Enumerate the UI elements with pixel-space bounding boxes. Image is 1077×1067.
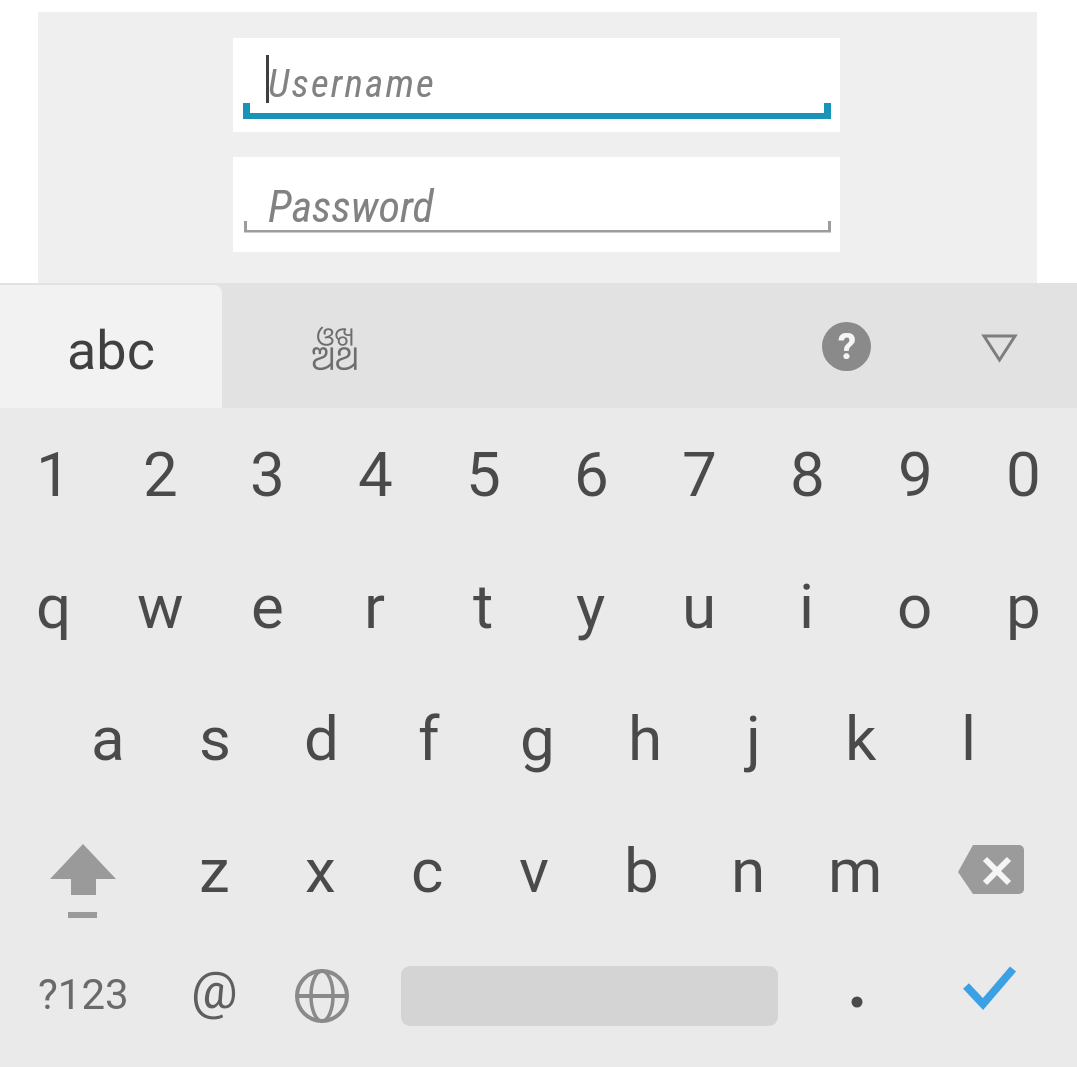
staticText: 0 bbox=[1006, 438, 1041, 511]
staticText: Username bbox=[268, 61, 437, 107]
staticText: q bbox=[36, 570, 72, 643]
staticText: 1 bbox=[36, 438, 71, 511]
staticText: i bbox=[799, 570, 815, 643]
button[interactable]: 5 bbox=[429, 408, 537, 540]
button[interactable] bbox=[375, 936, 803, 1067]
button[interactable]: w bbox=[107, 540, 214, 672]
button[interactable]: g bbox=[483, 672, 591, 804]
button[interactable]: 9 bbox=[861, 408, 969, 540]
staticText: c bbox=[411, 834, 444, 907]
staticText: n bbox=[731, 834, 766, 907]
button[interactable]: t bbox=[429, 540, 537, 672]
button[interactable]: @ bbox=[161, 936, 268, 1067]
staticText: v bbox=[519, 834, 550, 907]
staticText: abc bbox=[67, 319, 155, 382]
staticText: ଅଥ bbox=[262, 337, 408, 397]
button[interactable] bbox=[803, 936, 910, 1067]
staticText: s bbox=[199, 702, 231, 775]
staticText: 4 bbox=[358, 438, 393, 511]
staticText: 3 bbox=[250, 438, 285, 511]
staticText: @ bbox=[191, 960, 238, 1021]
button[interactable] bbox=[910, 936, 1077, 1067]
staticText: z bbox=[199, 834, 230, 907]
staticText: e bbox=[251, 570, 284, 643]
button[interactable]: ଓଖ bbox=[262, 285, 408, 408]
staticText: ଓଖ bbox=[262, 320, 408, 364]
staticText: b bbox=[624, 834, 659, 907]
staticText: 2 bbox=[143, 438, 178, 511]
button[interactable] bbox=[0, 804, 161, 936]
button[interactable]: n bbox=[695, 804, 802, 936]
staticText: a bbox=[91, 702, 125, 775]
staticText: h bbox=[628, 702, 663, 775]
staticText: u bbox=[682, 570, 717, 643]
button[interactable]: z bbox=[161, 804, 267, 936]
staticText: g bbox=[520, 702, 555, 775]
button[interactable]: v bbox=[481, 804, 588, 936]
button[interactable]: 4 bbox=[321, 408, 429, 540]
button[interactable]: 1 bbox=[0, 408, 107, 540]
button[interactable]: p bbox=[969, 540, 1077, 672]
button[interactable]: ? bbox=[822, 322, 871, 371]
button[interactable]: l bbox=[915, 672, 1023, 804]
button[interactable]: y bbox=[537, 540, 645, 672]
button[interactable]: a bbox=[54, 672, 161, 804]
button[interactable]: f bbox=[375, 672, 483, 804]
staticText: 7 bbox=[682, 438, 717, 511]
staticText: r bbox=[364, 570, 386, 643]
button[interactable]: j bbox=[699, 672, 807, 804]
button[interactable]: ?123 bbox=[0, 936, 161, 1067]
button[interactable]: e bbox=[214, 540, 321, 672]
staticText: f bbox=[418, 702, 440, 775]
button[interactable]: r bbox=[321, 540, 429, 672]
button[interactable]: Password bbox=[233, 157, 840, 252]
button[interactable]: m bbox=[802, 804, 909, 936]
staticText: ? bbox=[838, 326, 856, 368]
staticText: 5 bbox=[466, 438, 501, 511]
button[interactable] bbox=[975, 325, 1025, 371]
staticText: w bbox=[137, 570, 184, 643]
staticText: d bbox=[304, 702, 339, 775]
staticText: k bbox=[845, 702, 877, 775]
button[interactable]: 7 bbox=[645, 408, 753, 540]
button[interactable] bbox=[268, 936, 375, 1067]
button[interactable]: Username bbox=[233, 38, 840, 132]
staticText: o bbox=[897, 570, 933, 643]
button[interactable]: c bbox=[374, 804, 481, 936]
staticText: t bbox=[473, 570, 494, 643]
button[interactable]: 8 bbox=[753, 408, 861, 540]
button[interactable]: s bbox=[161, 672, 268, 804]
button[interactable]: u bbox=[645, 540, 753, 672]
button[interactable]: 3 bbox=[214, 408, 321, 540]
staticText: j bbox=[746, 702, 761, 775]
button[interactable] bbox=[909, 804, 1077, 936]
button[interactable]: d bbox=[268, 672, 375, 804]
staticText: 8 bbox=[790, 438, 825, 511]
button[interactable]: k bbox=[807, 672, 915, 804]
staticText: 9 bbox=[898, 438, 933, 511]
button[interactable]: h bbox=[591, 672, 699, 804]
staticText: m bbox=[828, 834, 883, 907]
staticText: ?123 bbox=[38, 970, 129, 1019]
button[interactable]: 6 bbox=[537, 408, 645, 540]
staticText: l bbox=[961, 702, 977, 775]
staticText: p bbox=[1006, 570, 1041, 643]
button[interactable]: abc bbox=[0, 285, 222, 408]
staticText: x bbox=[305, 834, 336, 907]
staticText: 6 bbox=[574, 438, 609, 511]
staticText: Password bbox=[268, 181, 434, 233]
button[interactable]: 0 bbox=[969, 408, 1077, 540]
button[interactable]: o bbox=[861, 540, 969, 672]
button[interactable]: b bbox=[588, 804, 695, 936]
button[interactable]: x bbox=[267, 804, 374, 936]
staticText: y bbox=[576, 570, 606, 643]
button[interactable]: 2 bbox=[107, 408, 214, 540]
button[interactable]: i bbox=[753, 540, 861, 672]
button[interactable]: q bbox=[0, 540, 107, 672]
